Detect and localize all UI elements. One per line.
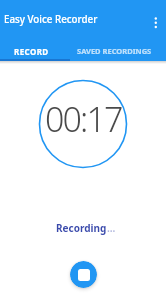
button[interactable] — [146, 0, 166, 31]
button[interactable]: SAVED RECORDINGS — [70, 37, 166, 61]
staticText: SAVED RECORDINGS — [77, 46, 152, 56]
staticText: Recording — [56, 221, 107, 235]
button[interactable] — [70, 261, 97, 288]
staticText: RECORD — [14, 46, 49, 57]
staticText: ... — [107, 221, 116, 235]
staticText: Easy Voice Recorder — [4, 13, 98, 26]
staticText: 00:17 — [45, 96, 122, 138]
button[interactable]: RECORD — [0, 37, 70, 61]
